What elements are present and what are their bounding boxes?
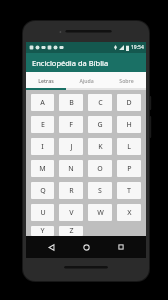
staticText: C [98,98,103,108]
button[interactable]: I [31,138,54,155]
button[interactable]: G [88,116,112,133]
staticText: Letras [38,77,54,84]
button[interactable]: Recent apps [111,237,131,257]
staticText: H [126,120,132,130]
button[interactable]: Home [76,237,96,257]
button[interactable]: R [59,182,83,199]
staticText: B [69,98,74,108]
button[interactable]: S [88,182,112,199]
staticText: W [97,208,104,218]
staticText: R [69,186,74,196]
staticText: S [98,186,102,196]
staticText: P [127,164,132,174]
staticText: J [70,142,73,152]
button[interactable]: K [88,138,112,155]
button[interactable]: U [31,204,54,221]
staticText: 19:54 [131,44,144,51]
button[interactable]: N [59,160,83,177]
button[interactable]: Letras [26,72,66,88]
button[interactable]: X [117,204,141,221]
staticText: G [97,120,103,130]
staticText: Y [40,226,45,236]
staticText: Q [40,186,46,196]
staticText: T [127,186,131,196]
staticText: Z [69,226,74,236]
button[interactable]: D [117,94,141,111]
staticText: N [68,164,74,174]
staticText: X [127,208,132,218]
staticText: Sobre [119,77,134,84]
staticText: A [40,98,45,108]
button[interactable]: Z [59,226,83,236]
button[interactable]: A [31,94,54,111]
button[interactable]: V [59,204,83,221]
button[interactable]: F [59,116,83,133]
staticText: I [41,142,44,152]
staticText: E [41,120,45,130]
staticText: Ajuda [79,77,94,84]
button[interactable]: H [117,116,141,133]
button[interactable]: Q [31,182,54,199]
button[interactable]: M [31,160,54,177]
button[interactable]: Back [41,237,61,257]
staticText: D [126,98,132,108]
button[interactable]: Ajuda [66,72,106,88]
button[interactable]: Sobre [106,72,146,88]
staticText: F [69,120,73,130]
button[interactable]: E [31,116,54,133]
button[interactable]: P [117,160,141,177]
button[interactable]: L [117,138,141,155]
button[interactable]: T [117,182,141,199]
button[interactable]: O [88,160,112,177]
staticText: L [127,142,131,152]
button[interactable]: J [59,138,83,155]
staticText: Enciclopédia da Bíblia [32,58,109,68]
button[interactable]: Y [31,226,54,236]
staticText: U [40,208,46,218]
button[interactable]: W [88,204,112,221]
staticText: O [97,164,103,174]
staticText: K [98,142,103,152]
staticText: M [39,164,46,174]
button[interactable]: B [59,94,83,111]
button[interactable]: C [88,94,112,111]
staticText: V [69,208,74,218]
